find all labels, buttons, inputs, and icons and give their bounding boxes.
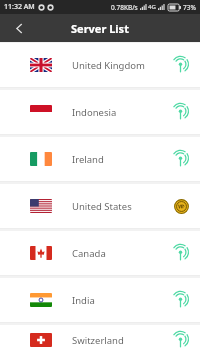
- button[interactable]: Indonesia: [0, 90, 200, 134]
- staticText: Server List: [71, 21, 129, 36]
- button[interactable]: Back: [8, 17, 30, 39]
- staticText: Switzerland: [72, 334, 124, 347]
- button[interactable]: United Kingdom: [0, 43, 200, 87]
- staticText: 4G: [148, 3, 156, 11]
- staticText: 0.78KB/s: [111, 3, 138, 12]
- staticText: United States: [72, 200, 132, 213]
- button[interactable]: India: [0, 278, 200, 322]
- staticText: Ireland: [72, 153, 104, 166]
- button[interactable]: Switzerland: [0, 325, 200, 355]
- staticText: 73%: [183, 3, 196, 12]
- staticText: India: [72, 294, 95, 307]
- button[interactable]: United States: [0, 184, 200, 228]
- staticText: United Kingdom: [72, 59, 145, 72]
- staticText: Indonesia: [72, 106, 117, 119]
- button[interactable]: Canada: [0, 231, 200, 275]
- staticText: 11:32 AM: [4, 2, 35, 12]
- staticText: Canada: [72, 247, 106, 260]
- button[interactable]: Ireland: [0, 137, 200, 181]
